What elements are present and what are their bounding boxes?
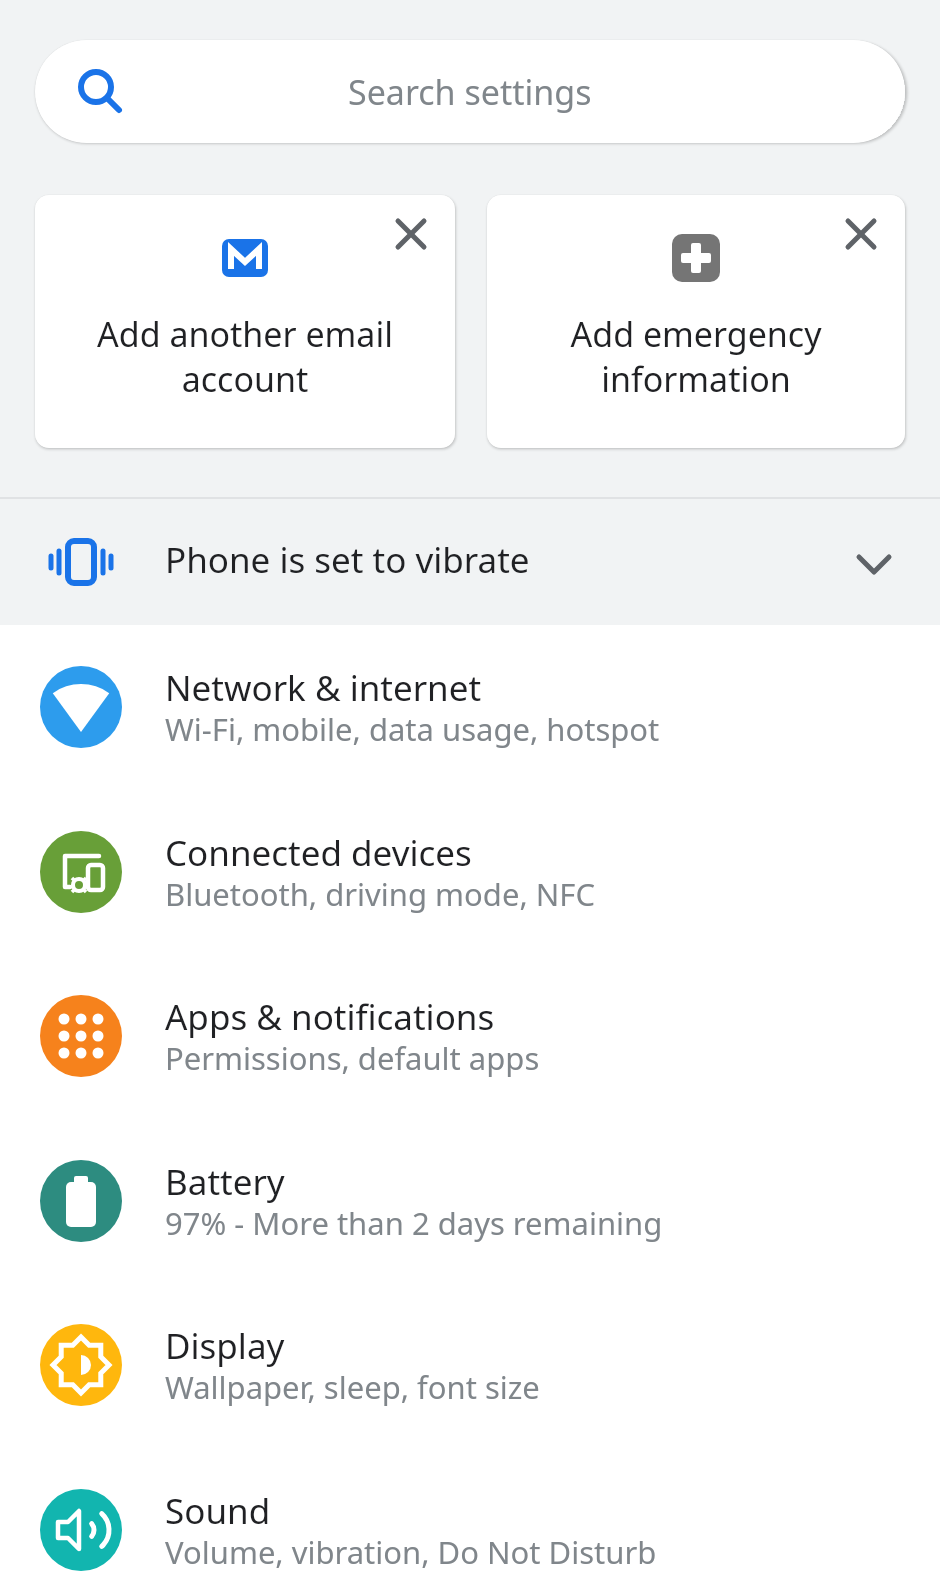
- staticText: Network & internet: [165, 664, 482, 712]
- staticText: Wallpaper, sleep, font size: [165, 1366, 540, 1408]
- staticText: Display: [165, 1322, 285, 1370]
- button[interactable]: [839, 212, 883, 256]
- staticText: Search settings: [348, 69, 592, 115]
- staticText: 97% - More than 2 days remaining: [165, 1202, 663, 1244]
- staticText: Connected devices: [165, 829, 472, 877]
- button[interactable]: Display: [0, 1283, 940, 1447]
- button[interactable]: Battery: [0, 1119, 940, 1283]
- button[interactable]: [389, 212, 433, 256]
- button[interactable]: Add emergency information: [487, 195, 905, 448]
- button[interactable]: Apps & notifications: [0, 954, 940, 1118]
- staticText: Apps & notifications: [165, 993, 495, 1041]
- staticText: Permissions, default apps: [165, 1037, 540, 1079]
- staticText: Add emergency information: [487, 311, 905, 402]
- staticText: Add another email account: [35, 311, 455, 402]
- button[interactable]: Search settings: [35, 40, 905, 143]
- button[interactable]: Network & internet: [0, 625, 940, 789]
- staticText: Sound: [165, 1487, 271, 1535]
- button[interactable]: Sound: [0, 1448, 940, 1583]
- button[interactable]: Add another email account: [35, 195, 455, 448]
- staticText: Volume, vibration, Do Not Disturb: [165, 1531, 657, 1573]
- staticText: Battery: [165, 1158, 285, 1206]
- button[interactable]: Phone is set to vibrate: [0, 499, 940, 625]
- staticText: Wi-Fi, mobile, data usage, hotspot: [165, 708, 660, 750]
- button[interactable]: Connected devices: [0, 790, 940, 954]
- staticText: Phone is set to vibrate: [165, 536, 530, 584]
- staticText: Bluetooth, driving mode, NFC: [165, 873, 595, 915]
